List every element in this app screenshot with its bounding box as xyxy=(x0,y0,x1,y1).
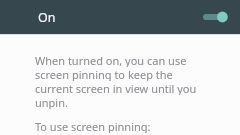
staticText: screen pinning to keep the xyxy=(35,67,173,81)
staticText: To use screen pinning: xyxy=(35,119,151,133)
staticText: When turned on, you can use xyxy=(35,53,187,67)
staticText: unpin. xyxy=(35,95,68,109)
button[interactable]: Screen pinning on xyxy=(202,7,230,27)
button[interactable]: On xyxy=(0,0,240,34)
staticText: On xyxy=(38,9,56,26)
staticText: current screen in view until you xyxy=(35,81,197,95)
